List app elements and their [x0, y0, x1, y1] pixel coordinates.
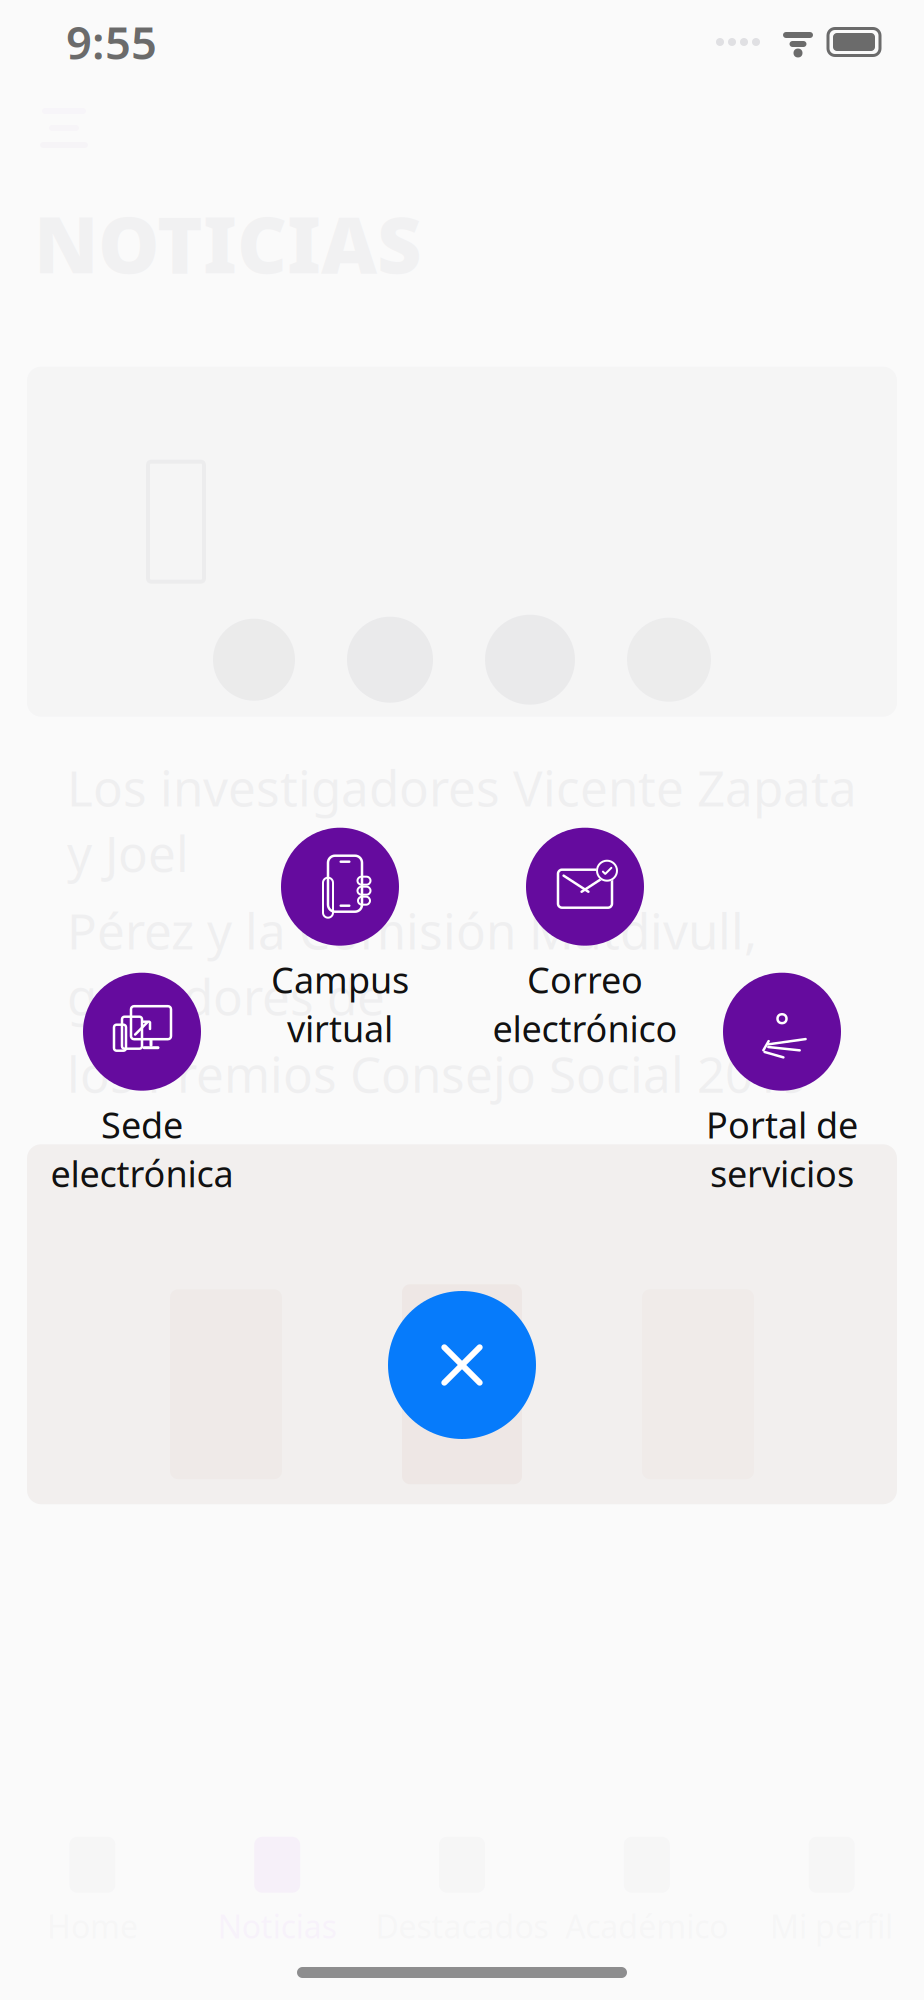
button[interactable]: Portal de	[682, 973, 882, 1197]
staticText: NOTICIAS	[34, 192, 422, 295]
staticText: servicios	[710, 1149, 854, 1197]
button[interactable]: Noticias	[185, 1837, 370, 1947]
button[interactable]: Cerrar menú	[388, 1291, 536, 1439]
staticText: Correo	[527, 956, 643, 1003]
staticText: Sede	[101, 1101, 183, 1148]
staticText: Los investigadores Vicente Zapata y Joel	[67, 755, 857, 886]
staticText: Pérez y la Comisión Matdivull, ganadores…	[67, 898, 757, 1029]
staticText: Portal de	[706, 1101, 858, 1148]
button[interactable]: Campus	[240, 828, 440, 1052]
staticText: Campus	[271, 956, 409, 1003]
staticText: los Premios Consejo Social 2019	[67, 1041, 809, 1106]
staticText: electrónico	[492, 1004, 677, 1052]
button[interactable]: Correo	[485, 828, 685, 1052]
staticText: virtual	[287, 1004, 393, 1052]
button[interactable]: Sede	[42, 973, 242, 1197]
staticText: 9:55	[66, 12, 157, 72]
staticText: electrónica	[50, 1149, 233, 1197]
